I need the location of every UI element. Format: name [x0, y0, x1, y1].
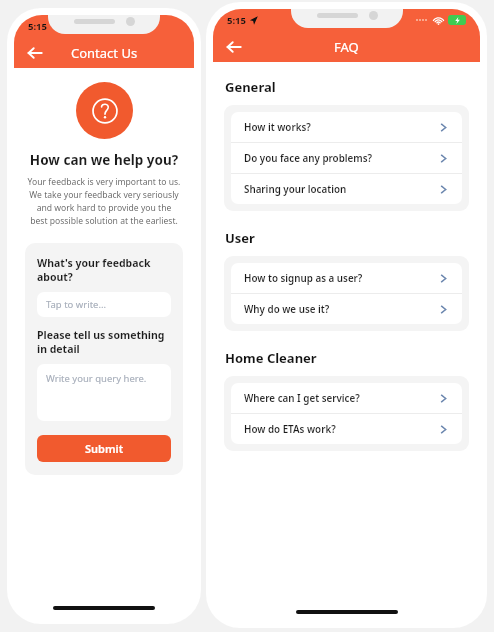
staticText: Contact Us [71, 44, 138, 62]
button[interactable]: How to signup as a user? [231, 263, 462, 293]
button[interactable]: Submit [37, 435, 171, 462]
staticText: Home Cleaner [225, 349, 317, 367]
button[interactable]: How do ETAs work? [231, 414, 462, 444]
staticText: 5:15 [28, 20, 47, 33]
staticText: How to signup as a user? [244, 272, 363, 285]
staticText: Where can I get service? [244, 392, 360, 405]
staticText: What's your feedback about? [37, 256, 171, 284]
staticText: Sharing your location [244, 183, 347, 196]
staticText: Write your query here. [46, 372, 147, 385]
staticText: How it works? [244, 121, 311, 134]
staticText: 5:15 [227, 14, 246, 27]
staticText: Tap to write... [46, 298, 107, 311]
button[interactable]: Back [219, 32, 249, 62]
staticText: Submit [85, 441, 124, 456]
button[interactable]: Why do we use it? [231, 294, 462, 324]
button[interactable]: Where can I get service? [231, 383, 462, 413]
staticText: User [225, 229, 255, 247]
staticText: Your feedback is very important to us. W… [27, 176, 181, 227]
button[interactable]: Sharing your location [231, 174, 462, 204]
button[interactable]: Write your query here. [37, 364, 171, 421]
button[interactable]: How it works? [231, 112, 462, 142]
staticText: Why do we use it? [244, 303, 330, 316]
staticText: How do ETAs work? [244, 423, 336, 436]
button[interactable]: Back [20, 38, 50, 68]
button[interactable]: Tap to write... [37, 292, 171, 317]
staticText: Please tell us something in detail [37, 328, 171, 356]
staticText: How can we help you? [14, 151, 194, 169]
button[interactable]: Do you face any problems? [231, 143, 462, 173]
staticText: Do you face any problems? [244, 152, 373, 165]
staticText: General [225, 78, 276, 96]
staticText: FAQ [334, 38, 359, 56]
